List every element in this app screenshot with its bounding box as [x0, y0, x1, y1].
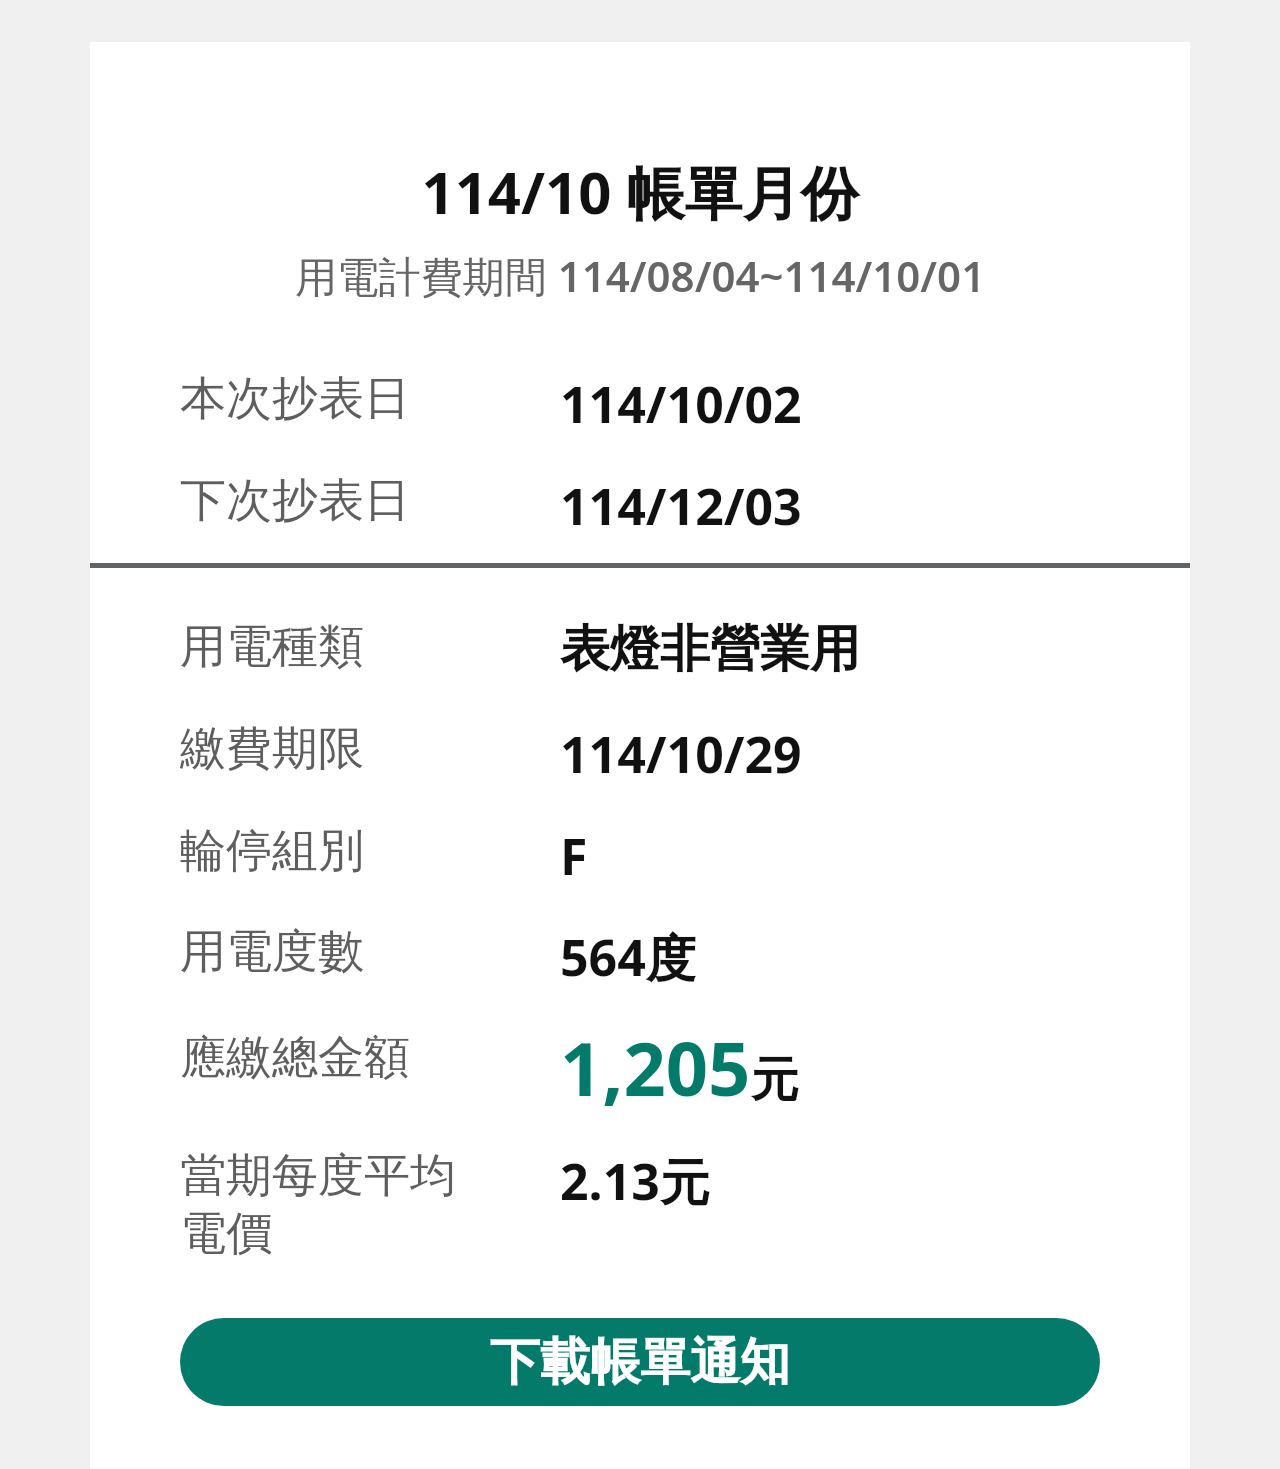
staticText: 用電計費期間 114/08/04~114/10/01: [90, 247, 1190, 304]
staticText: 輪停組別: [180, 822, 364, 880]
staticText: 元: [751, 1050, 799, 1110]
staticText: 電價: [180, 1205, 272, 1263]
staticText: 表燈非營業用: [560, 618, 860, 681]
staticText: 114/10 帳單月份: [90, 152, 1190, 231]
staticText: 114/12/03: [560, 472, 802, 540]
staticText: 2.13元: [560, 1147, 710, 1215]
staticText: 下次抄表日: [180, 472, 410, 530]
staticText: F: [560, 822, 588, 890]
staticText: 114/10/02: [560, 370, 802, 438]
staticText: 本次抄表日: [180, 370, 410, 428]
button[interactable]: 下載帳單通知: [180, 1318, 1100, 1406]
staticText: 下載帳單通知: [490, 1331, 790, 1394]
staticText: 用電度數: [180, 923, 364, 981]
staticText: 1,205: [560, 1017, 751, 1118]
staticText: 用電種類: [180, 618, 364, 676]
staticText: 114/10/29: [560, 720, 802, 788]
staticText: 564度: [560, 923, 696, 991]
staticText: 應繳總金額: [180, 1029, 410, 1087]
staticText: 繳費期限: [180, 720, 364, 778]
staticText: 當期每度平均: [180, 1147, 456, 1205]
